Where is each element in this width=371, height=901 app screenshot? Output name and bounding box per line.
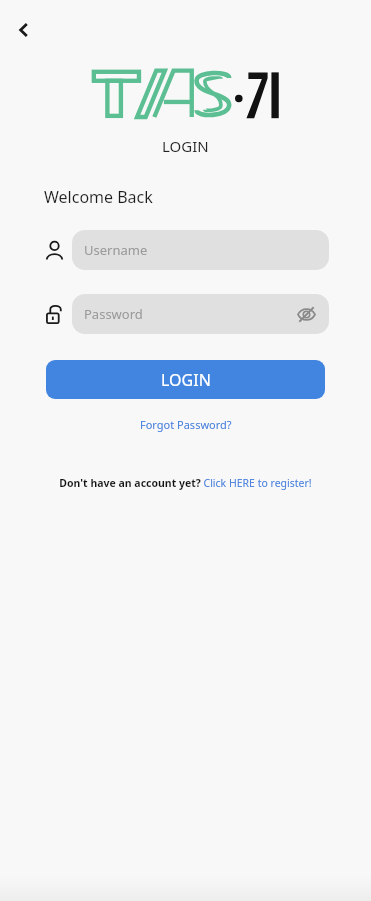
staticText: LOGIN (162, 136, 209, 156)
button[interactable]: Password (72, 294, 329, 334)
staticText: Username (84, 241, 148, 259)
button[interactable]: Show password (291, 299, 321, 329)
button[interactable]: Back (6, 12, 42, 48)
staticText: Welcome Back (44, 186, 153, 208)
staticText: Forgot Password? (140, 417, 232, 432)
button[interactable]: Forgot Password? (132, 414, 240, 435)
button[interactable]: LOGIN (46, 360, 325, 399)
button[interactable]: Don't have an account yet? Click HERE to… (53, 474, 318, 492)
staticText: LOGIN (161, 369, 211, 391)
staticText: Don't have an account yet? Click HERE to… (59, 476, 312, 490)
button[interactable]: Username (72, 230, 329, 270)
staticText: Password (84, 305, 143, 323)
